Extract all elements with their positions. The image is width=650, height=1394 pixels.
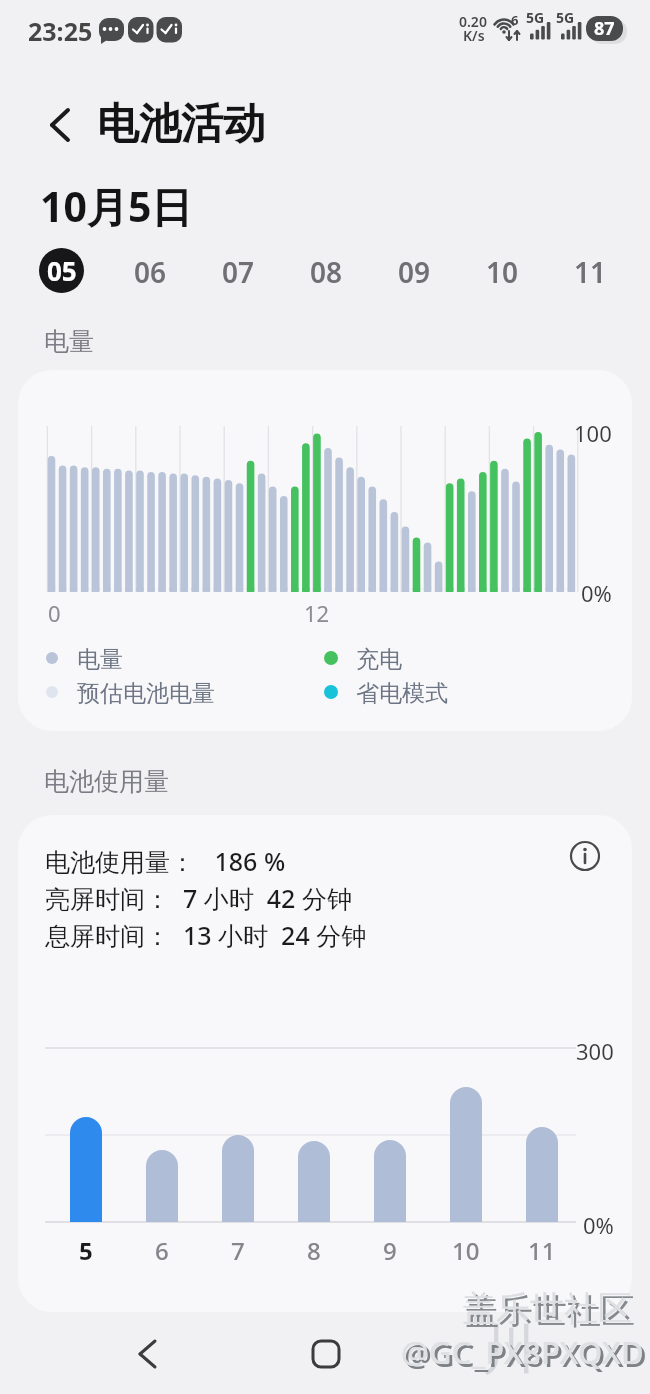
- staticText: @GC_PX8PXQXD: [404, 1334, 647, 1376]
- staticText: 5G: [526, 8, 545, 27]
- staticText: 0: [48, 598, 61, 628]
- staticText: 300: [576, 1036, 614, 1066]
- staticText: 08: [310, 253, 343, 291]
- staticText: 05: [47, 253, 77, 288]
- staticText: 12: [304, 598, 330, 628]
- staticText: 盖乐世社区: [462, 1287, 632, 1330]
- staticText: 09: [398, 253, 431, 291]
- staticText: 6: [155, 1234, 169, 1267]
- staticText: 6: [511, 11, 519, 29]
- staticText: K/s: [463, 26, 485, 45]
- button[interactable]: 07: [208, 248, 268, 296]
- staticText: 7: [231, 1234, 245, 1267]
- staticText: 0%: [583, 1210, 614, 1240]
- staticText: 亮屏时间： 7 小时 42 分钟: [45, 881, 352, 915]
- button[interactable]: 11: [560, 248, 620, 296]
- button[interactable]: [300, 1330, 356, 1380]
- staticText: 5G: [556, 8, 575, 27]
- staticText: 10: [452, 1234, 480, 1267]
- button[interactable]: [567, 838, 603, 874]
- staticText: 23:25: [28, 14, 93, 48]
- staticText: 10: [486, 253, 519, 291]
- staticText: 100: [574, 418, 612, 448]
- button[interactable]: 09: [384, 248, 444, 296]
- staticText: 0%: [581, 578, 612, 608]
- staticText: 5: [79, 1234, 93, 1267]
- staticText: 盖乐世社区: [465, 1290, 635, 1333]
- staticText: 电量: [44, 326, 94, 357]
- staticText: 电量: [77, 645, 123, 674]
- staticText: 0.20: [459, 12, 487, 31]
- staticText: 11: [528, 1234, 556, 1267]
- staticText: 8: [307, 1234, 321, 1267]
- staticText: 预估电池电量: [77, 679, 215, 708]
- staticText: 电池活动: [97, 98, 265, 151]
- staticText: 10月5日: [40, 178, 193, 234]
- button[interactable]: 06: [120, 248, 180, 296]
- staticText: 07: [222, 253, 255, 291]
- staticText: 06: [134, 253, 167, 291]
- staticText: 川: [482, 1316, 536, 1384]
- staticText: 省电模式: [356, 679, 448, 708]
- button[interactable]: [120, 1330, 176, 1380]
- staticText: @GC_PX8PXQXD: [401, 1331, 644, 1373]
- staticText: 电池使用量: [44, 766, 169, 797]
- staticText: 87: [594, 16, 615, 41]
- staticText: 9: [383, 1234, 397, 1267]
- staticText: 充电: [356, 645, 402, 674]
- staticText: 电池使用量： 186 %: [45, 844, 286, 878]
- button[interactable]: 10: [472, 248, 532, 296]
- button[interactable]: [38, 100, 88, 150]
- button[interactable]: 08: [296, 248, 356, 296]
- staticText: 11: [574, 253, 607, 291]
- button[interactable]: 05: [39, 248, 84, 293]
- staticText: 息屏时间： 13 小时 24 分钟: [45, 918, 367, 952]
